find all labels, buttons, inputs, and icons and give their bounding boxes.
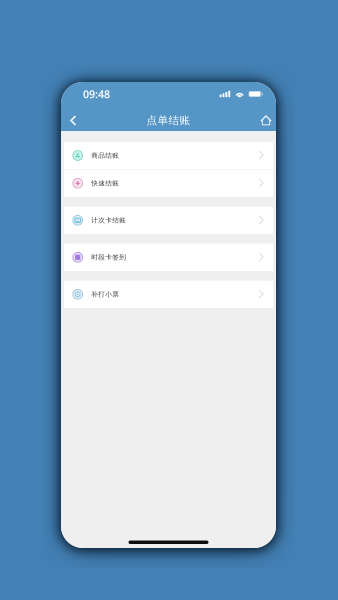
button[interactable]: 计次卡结账 [64,207,273,234]
button[interactable]: 快速结账 [64,170,273,197]
button[interactable]: Home [256,106,276,131]
staticText: 计次卡结账 [91,216,126,224]
button[interactable]: 商品结账 [64,142,273,169]
staticText: 点单结账 [146,114,190,127]
staticText: 快速结账 [91,179,119,187]
staticText: 补打小票 [91,290,119,298]
button[interactable]: 时段卡签到 [64,244,273,271]
button[interactable]: Back [63,106,83,131]
staticText: 商品结账 [91,151,119,160]
staticText: 时段卡签到 [91,253,126,261]
button[interactable]: 补打小票 [64,281,273,308]
staticText: 09:48 [83,87,110,101]
